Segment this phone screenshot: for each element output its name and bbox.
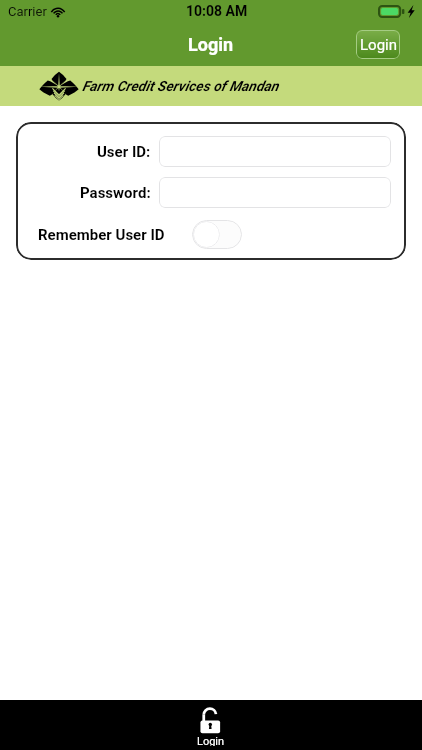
other: Login bbox=[199, 709, 223, 734]
staticText: Remember User ID bbox=[38, 226, 165, 244]
staticText: Login bbox=[197, 735, 225, 746]
staticText: Login bbox=[360, 36, 397, 54]
staticText: Farm Credit Services of Mandan bbox=[82, 78, 279, 94]
button[interactable]: User ID: bbox=[159, 136, 391, 167]
button[interactable]: Password: bbox=[159, 177, 391, 208]
staticText: Login bbox=[188, 34, 234, 55]
staticText: 10:08 AM bbox=[186, 3, 248, 19]
button[interactable]: Login bbox=[356, 30, 400, 59]
button[interactable]: Remember User ID bbox=[192, 220, 242, 249]
staticText: User ID: bbox=[97, 143, 151, 161]
staticText: Password: bbox=[80, 184, 151, 202]
button[interactable]: Login bbox=[171, 700, 251, 750]
staticText: Carrier bbox=[8, 4, 47, 19]
